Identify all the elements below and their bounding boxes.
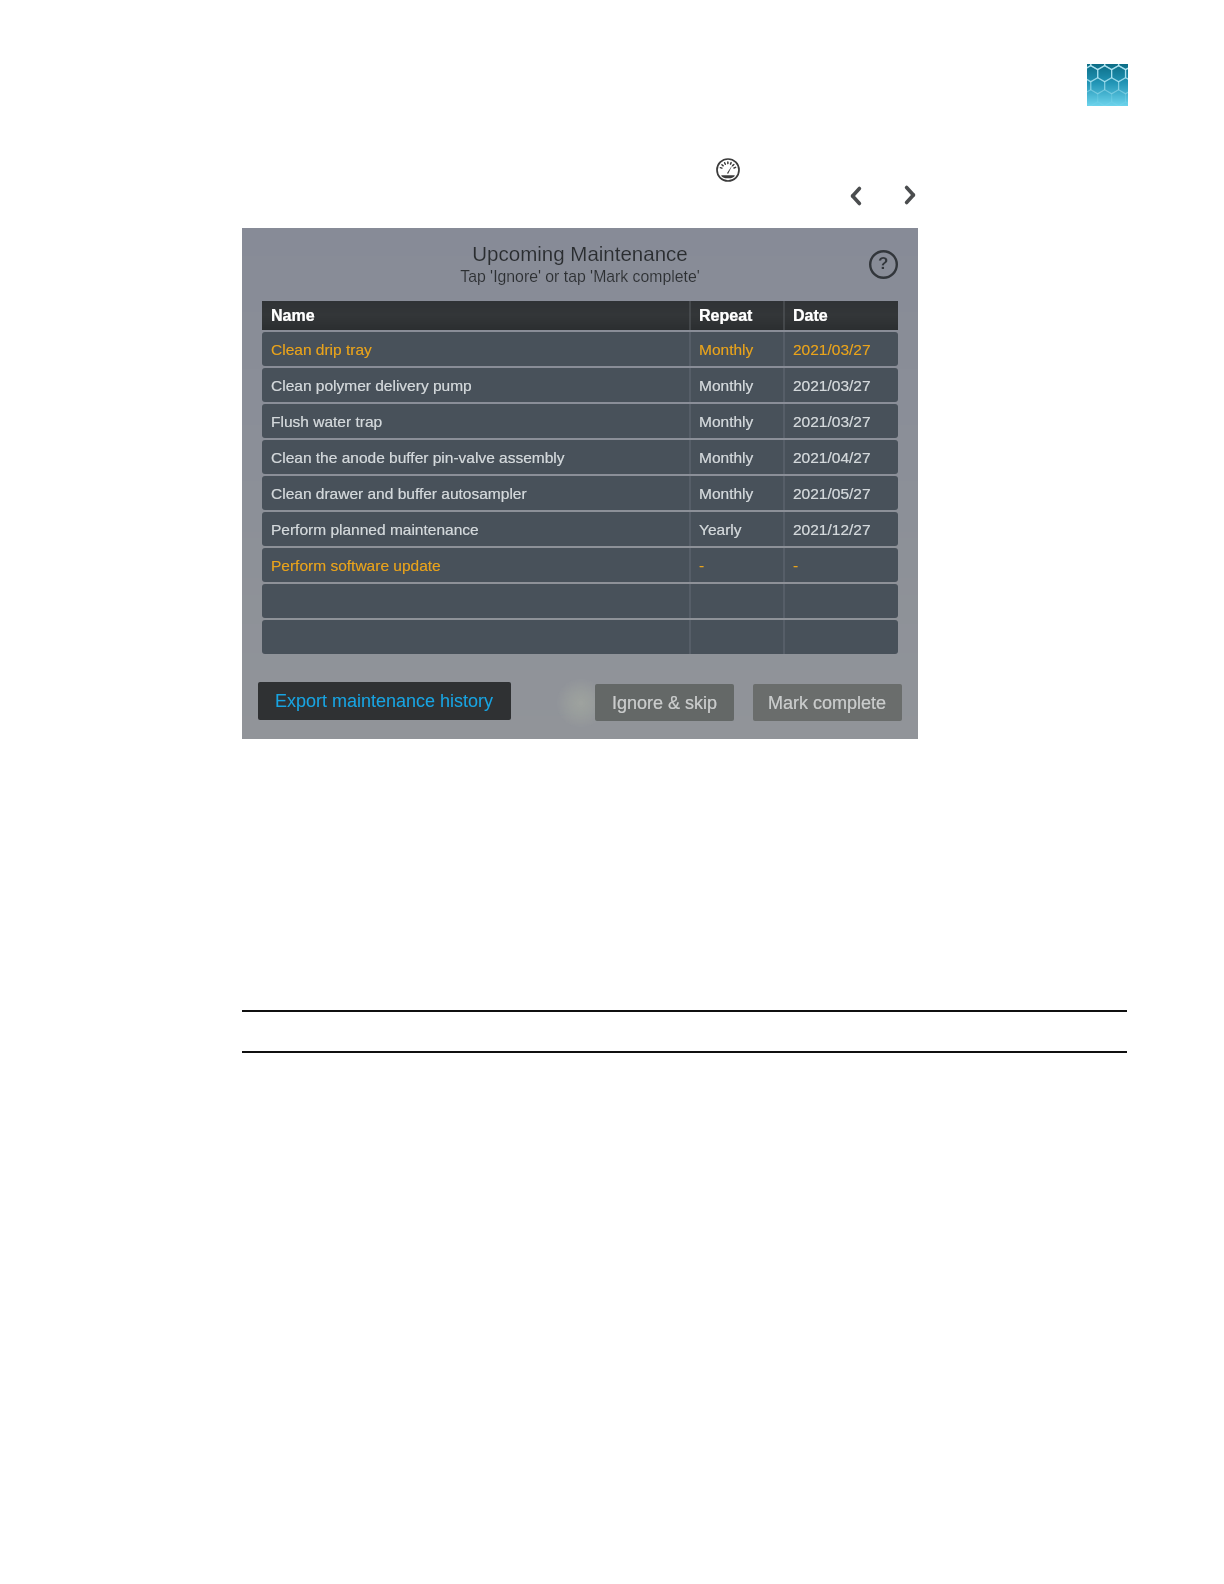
staticText: Clean drawer and buffer autosampler bbox=[271, 485, 527, 502]
staticText: - bbox=[793, 557, 799, 574]
staticText: Date bbox=[793, 307, 828, 325]
staticText: Ignore & skip bbox=[612, 693, 718, 713]
staticText: Monthly bbox=[699, 413, 754, 430]
staticText: Monthly bbox=[699, 341, 754, 358]
staticText: Repeat bbox=[699, 307, 753, 325]
staticText: Export maintenance history bbox=[275, 691, 494, 711]
button[interactable]: Help bbox=[868, 249, 899, 280]
staticText: Monthly bbox=[699, 449, 754, 466]
button[interactable]: Clean drawer and buffer autosampler bbox=[262, 476, 898, 510]
staticText: Clean polymer delivery pump bbox=[271, 377, 472, 394]
button[interactable]: Perform planned maintenance bbox=[262, 512, 898, 546]
button[interactable]: Ignore & skip bbox=[595, 684, 734, 721]
staticText: Clean the anode buffer pin-valve assembl… bbox=[271, 449, 565, 466]
staticText: 2021/04/27 bbox=[793, 449, 871, 466]
staticText: Upcoming Maintenance bbox=[242, 242, 918, 265]
button[interactable]: Flush water trap bbox=[262, 404, 898, 438]
staticText: Perform software update bbox=[271, 557, 441, 574]
button[interactable]: Perform software update bbox=[262, 548, 898, 582]
button[interactable]: Mark complete bbox=[753, 684, 902, 721]
staticText: Monthly bbox=[699, 485, 754, 502]
button[interactable]: Clean the anode buffer pin-valve assembl… bbox=[262, 440, 898, 474]
staticText: 2021/03/27 bbox=[793, 377, 871, 394]
staticText: Flush water trap bbox=[271, 413, 383, 430]
button[interactable]: Clean drip tray bbox=[262, 332, 898, 366]
button[interactable]: Previous page bbox=[839, 179, 873, 213]
staticText: Tap 'Ignore' or tap 'Mark complete' bbox=[242, 268, 918, 286]
staticText: Perform planned maintenance bbox=[271, 521, 479, 538]
staticText: Yearly bbox=[699, 521, 742, 538]
staticText: Mark complete bbox=[768, 693, 887, 713]
staticText: Monthly bbox=[699, 377, 754, 394]
button[interactable]: Export maintenance history bbox=[258, 682, 511, 720]
staticText: 2021/12/27 bbox=[793, 521, 871, 538]
staticText: Name bbox=[271, 307, 315, 325]
staticText: Clean drip tray bbox=[271, 341, 372, 358]
staticText: ? bbox=[878, 254, 889, 273]
staticText: 2021/05/27 bbox=[793, 485, 871, 502]
button[interactable]: Next page bbox=[893, 178, 927, 212]
staticText: 2021/03/27 bbox=[793, 341, 871, 358]
button[interactable]: Clean polymer delivery pump bbox=[262, 368, 898, 402]
staticText: 2021/03/27 bbox=[793, 413, 871, 430]
staticText: - bbox=[699, 557, 705, 574]
